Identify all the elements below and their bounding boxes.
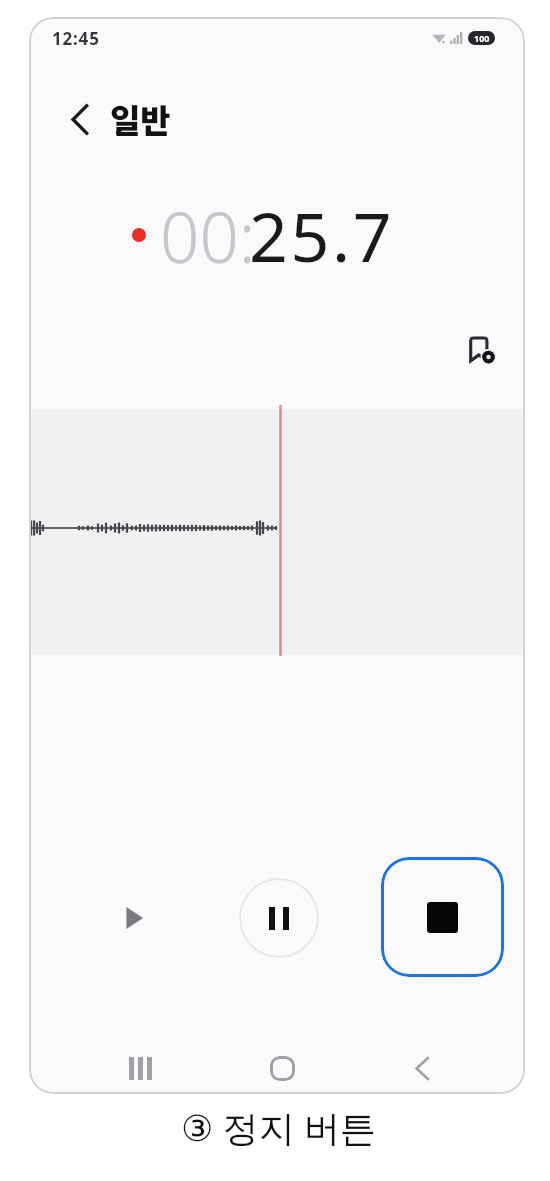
staticText: 일반 [110,95,171,143]
button[interactable]: Stop [381,857,504,977]
button[interactable]: Add bookmark [459,327,503,371]
staticText: 12:45 [52,27,100,50]
button[interactable]: Back [59,99,99,139]
button[interactable]: Recents [117,1045,163,1091]
staticText: 100 [474,32,490,44]
button[interactable]: Pause [239,878,319,958]
staticText: 25.7 [249,189,395,269]
staticText: ③ 정지 버튼 [181,1103,376,1152]
button[interactable]: Back [399,1045,445,1091]
button[interactable]: Home [259,1045,305,1091]
staticText: 00: [160,189,256,269]
button[interactable]: Play [110,894,158,942]
